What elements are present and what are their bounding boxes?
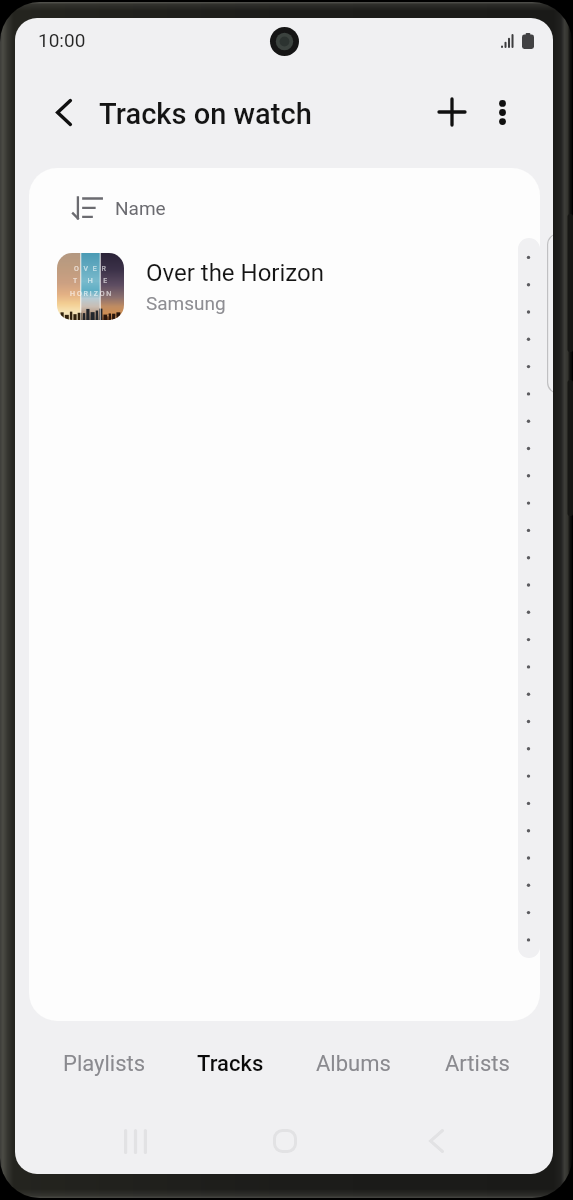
button[interactable]: OVER	[29, 240, 540, 333]
button[interactable]: Navigate up	[40, 88, 88, 136]
button[interactable]: Add tracks	[428, 88, 476, 136]
staticText: Albums	[316, 1051, 391, 1077]
staticText: 10:00	[38, 29, 86, 51]
button[interactable]: Tracks	[170, 1033, 290, 1095]
staticText: Tracks	[197, 1051, 264, 1077]
staticText: Samsung	[146, 292, 226, 314]
staticText: HORIZON	[70, 290, 114, 298]
other: Battery	[522, 33, 534, 49]
button[interactable]: Edge panel handle	[547, 233, 553, 394]
button[interactable]: Playlists	[44, 1033, 164, 1095]
staticText: Playlists	[63, 1051, 146, 1077]
button[interactable]: Artists	[417, 1033, 537, 1095]
staticText: Over the Horizon	[146, 259, 324, 287]
other: Signal strength	[501, 34, 515, 48]
button[interactable]: Home	[261, 1117, 309, 1165]
button[interactable]: More options	[478, 88, 526, 136]
staticText: Artists	[445, 1051, 510, 1077]
staticText: Name	[115, 197, 166, 219]
button[interactable]: Name	[29, 168, 540, 248]
button[interactable]: Index scroll bar	[518, 238, 540, 958]
staticText: THE	[73, 277, 118, 285]
staticText: Tracks on watch	[99, 97, 312, 131]
button[interactable]: Recent apps	[111, 1117, 159, 1165]
button[interactable]: Albums	[293, 1033, 413, 1095]
staticText: OVER	[74, 265, 111, 273]
